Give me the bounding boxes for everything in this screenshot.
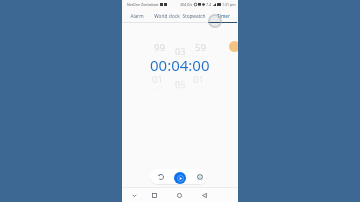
staticText: Alarm [130,13,144,19]
button[interactable]: Hide keyboard [125,188,143,202]
button[interactable]: Home [170,188,188,202]
staticText: World clock [154,13,180,19]
staticText: Stopwatch [182,13,206,19]
button[interactable]: Start timer [174,172,186,184]
button[interactable]: Alarm [123,9,151,22]
button[interactable]: Reset timer [154,170,168,184]
button[interactable]: Stopwatch [180,9,208,22]
staticText: 01 [193,73,204,86]
staticText: 304.0/s [180,2,193,7]
button[interactable]: Back [195,188,213,202]
staticText: 00:04:00 [150,55,210,75]
button[interactable]: Timer settings [193,170,207,184]
button[interactable]: Recent apps [145,188,163,202]
staticText: Timer [217,13,230,19]
staticText: 01 [152,73,163,86]
staticText: 05 [175,78,186,90]
staticText: 99 [154,41,165,54]
button[interactable]: Timer [209,9,237,22]
button[interactable]: World clock [153,9,181,22]
staticText: 03 [175,45,186,57]
staticText: 7.4 [206,2,212,7]
staticText: 59 [195,41,206,54]
staticText: NetOne Zimbabwe [127,2,159,7]
staticText: 06 [177,84,184,92]
staticText: 1:31 pm [222,2,236,7]
